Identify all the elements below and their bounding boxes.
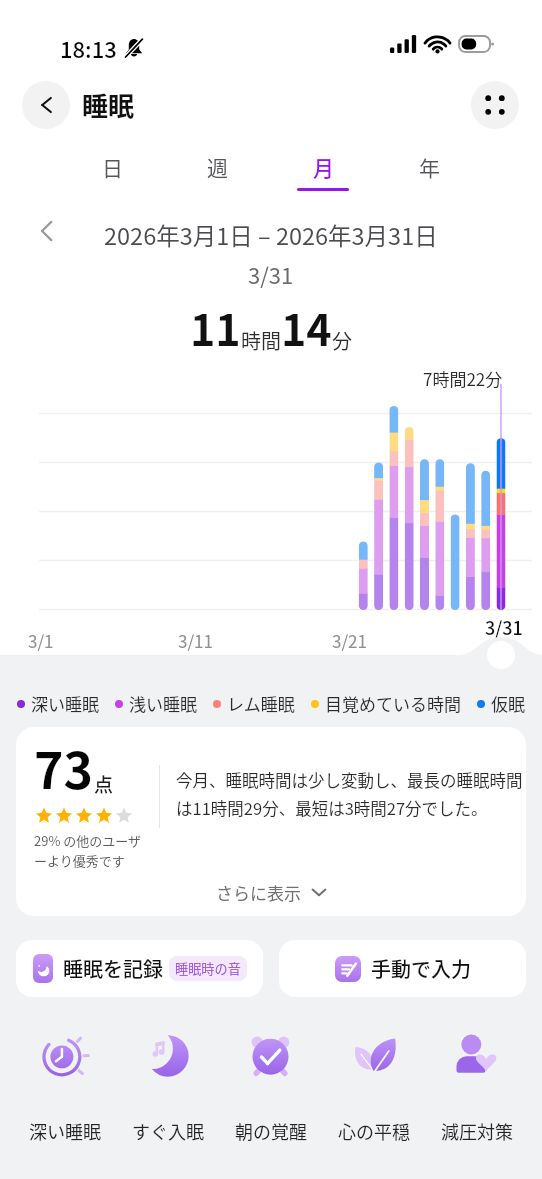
staticText: 3/21 xyxy=(332,628,367,653)
button[interactable]: 深い睡眠 xyxy=(14,1033,116,1144)
staticText: 2026年3月1日 – 2026年3月31日 xyxy=(104,218,438,252)
button[interactable]: Previous period xyxy=(38,219,54,243)
staticText: 月 xyxy=(313,152,334,182)
staticText: 3/31 xyxy=(485,614,523,640)
staticText: 3/1 xyxy=(28,628,54,653)
button[interactable]: 週 xyxy=(165,152,270,200)
staticText: 点 xyxy=(94,770,114,798)
button[interactable]: すぐ入眠 xyxy=(116,1033,219,1144)
staticText: 手動で入力 xyxy=(371,954,471,983)
staticText: さらに表示 xyxy=(216,880,301,905)
staticText: 睡眠を記録 xyxy=(63,954,163,983)
staticText: 18:13 xyxy=(60,32,117,64)
button[interactable]: 睡眠を記録 xyxy=(16,940,263,997)
staticText: 3/11 xyxy=(178,628,213,653)
button[interactable]: さらに表示 xyxy=(16,868,526,916)
staticText: 29% の他のユーザ ーより優秀です xyxy=(34,831,142,870)
staticText: 今月、睡眠時間は少し変動し、最長の睡眠時間は11時間29分、最短は3時間27分で… xyxy=(176,768,526,819)
staticText: 仮眠 xyxy=(491,691,525,716)
staticText: 日 xyxy=(102,152,123,182)
button[interactable]: 月 xyxy=(270,152,376,200)
button[interactable]: 朝の覚醒 xyxy=(219,1033,322,1144)
staticText: 73 xyxy=(34,731,93,803)
button[interactable]: 日 xyxy=(60,152,165,200)
staticText: 浅い睡眠 xyxy=(129,691,197,716)
staticText: 深い睡眠 xyxy=(31,691,99,716)
staticText: 睡眠 xyxy=(82,86,135,124)
staticText: 11 xyxy=(190,296,241,358)
staticText: 目覚めている時間 xyxy=(325,691,461,716)
staticText: 朝の覚醒 xyxy=(235,1118,307,1144)
staticText: 年 xyxy=(419,152,440,182)
button[interactable]: Back xyxy=(22,81,70,129)
staticText: すぐ入眠 xyxy=(132,1118,204,1144)
button[interactable]: More options xyxy=(471,81,519,129)
staticText: 7時間22分 xyxy=(423,366,503,391)
button[interactable]: 減圧対策 xyxy=(425,1033,528,1144)
button[interactable]: 手動で入力 xyxy=(279,940,526,997)
staticText: 時間 xyxy=(241,326,281,355)
staticText: 14 xyxy=(281,296,332,358)
staticText: 減圧対策 xyxy=(441,1118,513,1144)
button[interactable]: 年 xyxy=(376,152,482,200)
staticText: 3/31 xyxy=(248,258,294,290)
staticText: 心の平穏 xyxy=(338,1118,410,1144)
staticText: 分 xyxy=(332,326,352,355)
staticText: 週 xyxy=(207,152,228,182)
staticText: 深い睡眠 xyxy=(29,1118,101,1144)
staticText: 睡眠時の音 xyxy=(175,959,241,978)
button[interactable]: 心の平穏 xyxy=(322,1033,425,1144)
staticText: レム睡眠 xyxy=(227,691,295,716)
